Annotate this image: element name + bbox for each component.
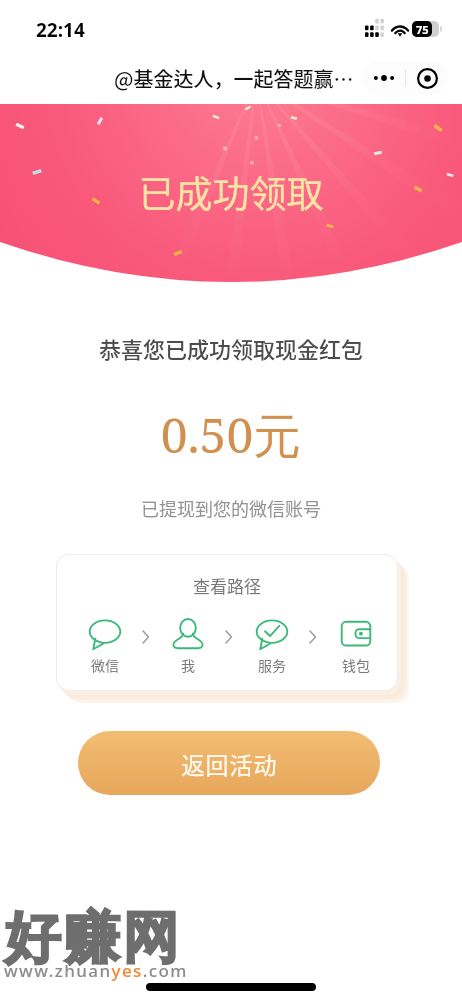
staticText: 服务	[258, 655, 286, 675]
button[interactable]: 微信	[75, 617, 135, 675]
staticText: 钱包	[342, 655, 370, 675]
button[interactable]: 服务	[242, 617, 302, 675]
staticText: 我	[181, 655, 195, 675]
button[interactable]: 我	[158, 617, 218, 675]
staticText: @基金达人，一起答题赢…	[114, 64, 354, 93]
staticText: 查看路径	[57, 573, 397, 598]
staticText: 75	[416, 22, 429, 37]
staticText: 已提现到您的微信账号	[0, 495, 462, 521]
button[interactable]: 钱包	[326, 617, 386, 675]
staticText: www.zhuanyes.com	[4, 959, 188, 982]
button[interactable]: Close mini program	[406, 61, 448, 95]
button[interactable]: 返回活动	[78, 731, 380, 795]
staticText: 0.50元	[0, 402, 462, 468]
staticText: 已成功领取	[0, 165, 462, 219]
button[interactable]: More options	[362, 61, 405, 95]
staticText: 恭喜您已成功领取现金红包	[0, 332, 462, 364]
staticText: 微信	[91, 655, 119, 675]
staticText: 好赚网	[3, 903, 180, 974]
staticText: 22:14	[36, 17, 85, 43]
staticText: 返回活动	[181, 747, 277, 780]
